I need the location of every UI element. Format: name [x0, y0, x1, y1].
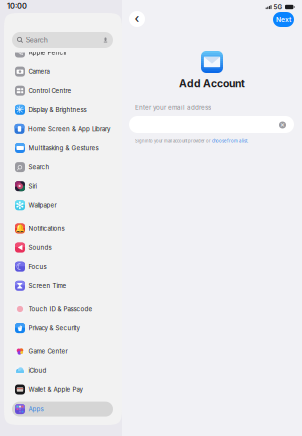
staticText: ⌕ — [16, 161, 23, 173]
staticText: Touch ID & Passcode — [28, 305, 92, 313]
button[interactable]: Next — [273, 12, 294, 27]
button[interactable]: Siri — [12, 179, 113, 194]
staticText: ‹ — [134, 11, 139, 26]
staticText: ⧗ — [16, 281, 23, 290]
staticText: Multitasking & Gestures — [28, 144, 98, 152]
button[interactable]: ⧗ — [12, 278, 113, 293]
button[interactable]: iCloud — [12, 363, 113, 378]
staticText: Game Center — [28, 348, 67, 355]
button[interactable]: Camera — [12, 64, 113, 79]
staticText: ☾ — [16, 261, 24, 272]
button[interactable]: Back — [129, 11, 145, 27]
staticText: 5G — [274, 3, 283, 11]
staticText: Home Screen & App Library — [28, 125, 110, 133]
button[interactable]: ☾ — [12, 259, 113, 274]
staticText: Next — [276, 15, 291, 24]
staticText: Screen Time — [28, 282, 66, 289]
staticText: Search — [26, 36, 48, 44]
staticText: 10:00 — [7, 1, 27, 10]
button[interactable]: Apps — [12, 402, 113, 417]
button[interactable]: ✎ — [12, 45, 113, 60]
staticText: ✎ — [16, 47, 24, 58]
staticText: Apps — [28, 405, 43, 413]
button[interactable]: Multitasking & Gestures — [12, 140, 113, 155]
staticText: iCloud — [28, 367, 46, 374]
staticText: × — [280, 120, 285, 129]
staticText: ✳ — [15, 104, 24, 116]
staticText: Siri — [28, 182, 36, 190]
button[interactable]: Game Center — [12, 344, 113, 359]
button[interactable]: ⌕ — [12, 160, 113, 175]
button[interactable]: Privacy & Security — [12, 321, 113, 336]
button[interactable]: ◀ — [12, 240, 113, 255]
button[interactable]: 🔔 — [12, 221, 113, 236]
staticText: choose from a list. — [212, 138, 248, 144]
button[interactable]: Control Centre — [12, 83, 113, 98]
staticText: Wallpaper — [28, 202, 56, 209]
staticText: 🔔 — [15, 224, 25, 233]
staticText: Sign in to your mail account provider or — [135, 138, 212, 144]
button[interactable]: Wallet & Apple Pay — [12, 382, 113, 397]
staticText: Add Account — [179, 77, 245, 90]
staticText: Wallet & Apple Pay — [28, 386, 82, 393]
staticText: Display & Brightness — [28, 106, 86, 113]
button[interactable]: ✻ — [12, 198, 113, 213]
button[interactable]: ✳ — [12, 102, 113, 117]
staticText: ◀ — [17, 244, 22, 251]
staticText: Notifications — [28, 225, 64, 232]
staticText: Control Centre — [28, 87, 71, 94]
staticText: ✻ — [15, 199, 24, 211]
staticText: Sounds — [28, 244, 51, 251]
staticText: Privacy & Security — [28, 324, 79, 332]
staticText: Focus — [28, 263, 46, 270]
button[interactable]: Home Screen & App Library — [12, 121, 113, 136]
button[interactable]: Touch ID & Passcode — [12, 301, 113, 316]
staticText: Search — [28, 163, 49, 171]
staticText: Apple Pencil — [28, 49, 65, 56]
staticText: Camera — [28, 68, 49, 75]
staticText: Enter your email address — [135, 104, 211, 111]
